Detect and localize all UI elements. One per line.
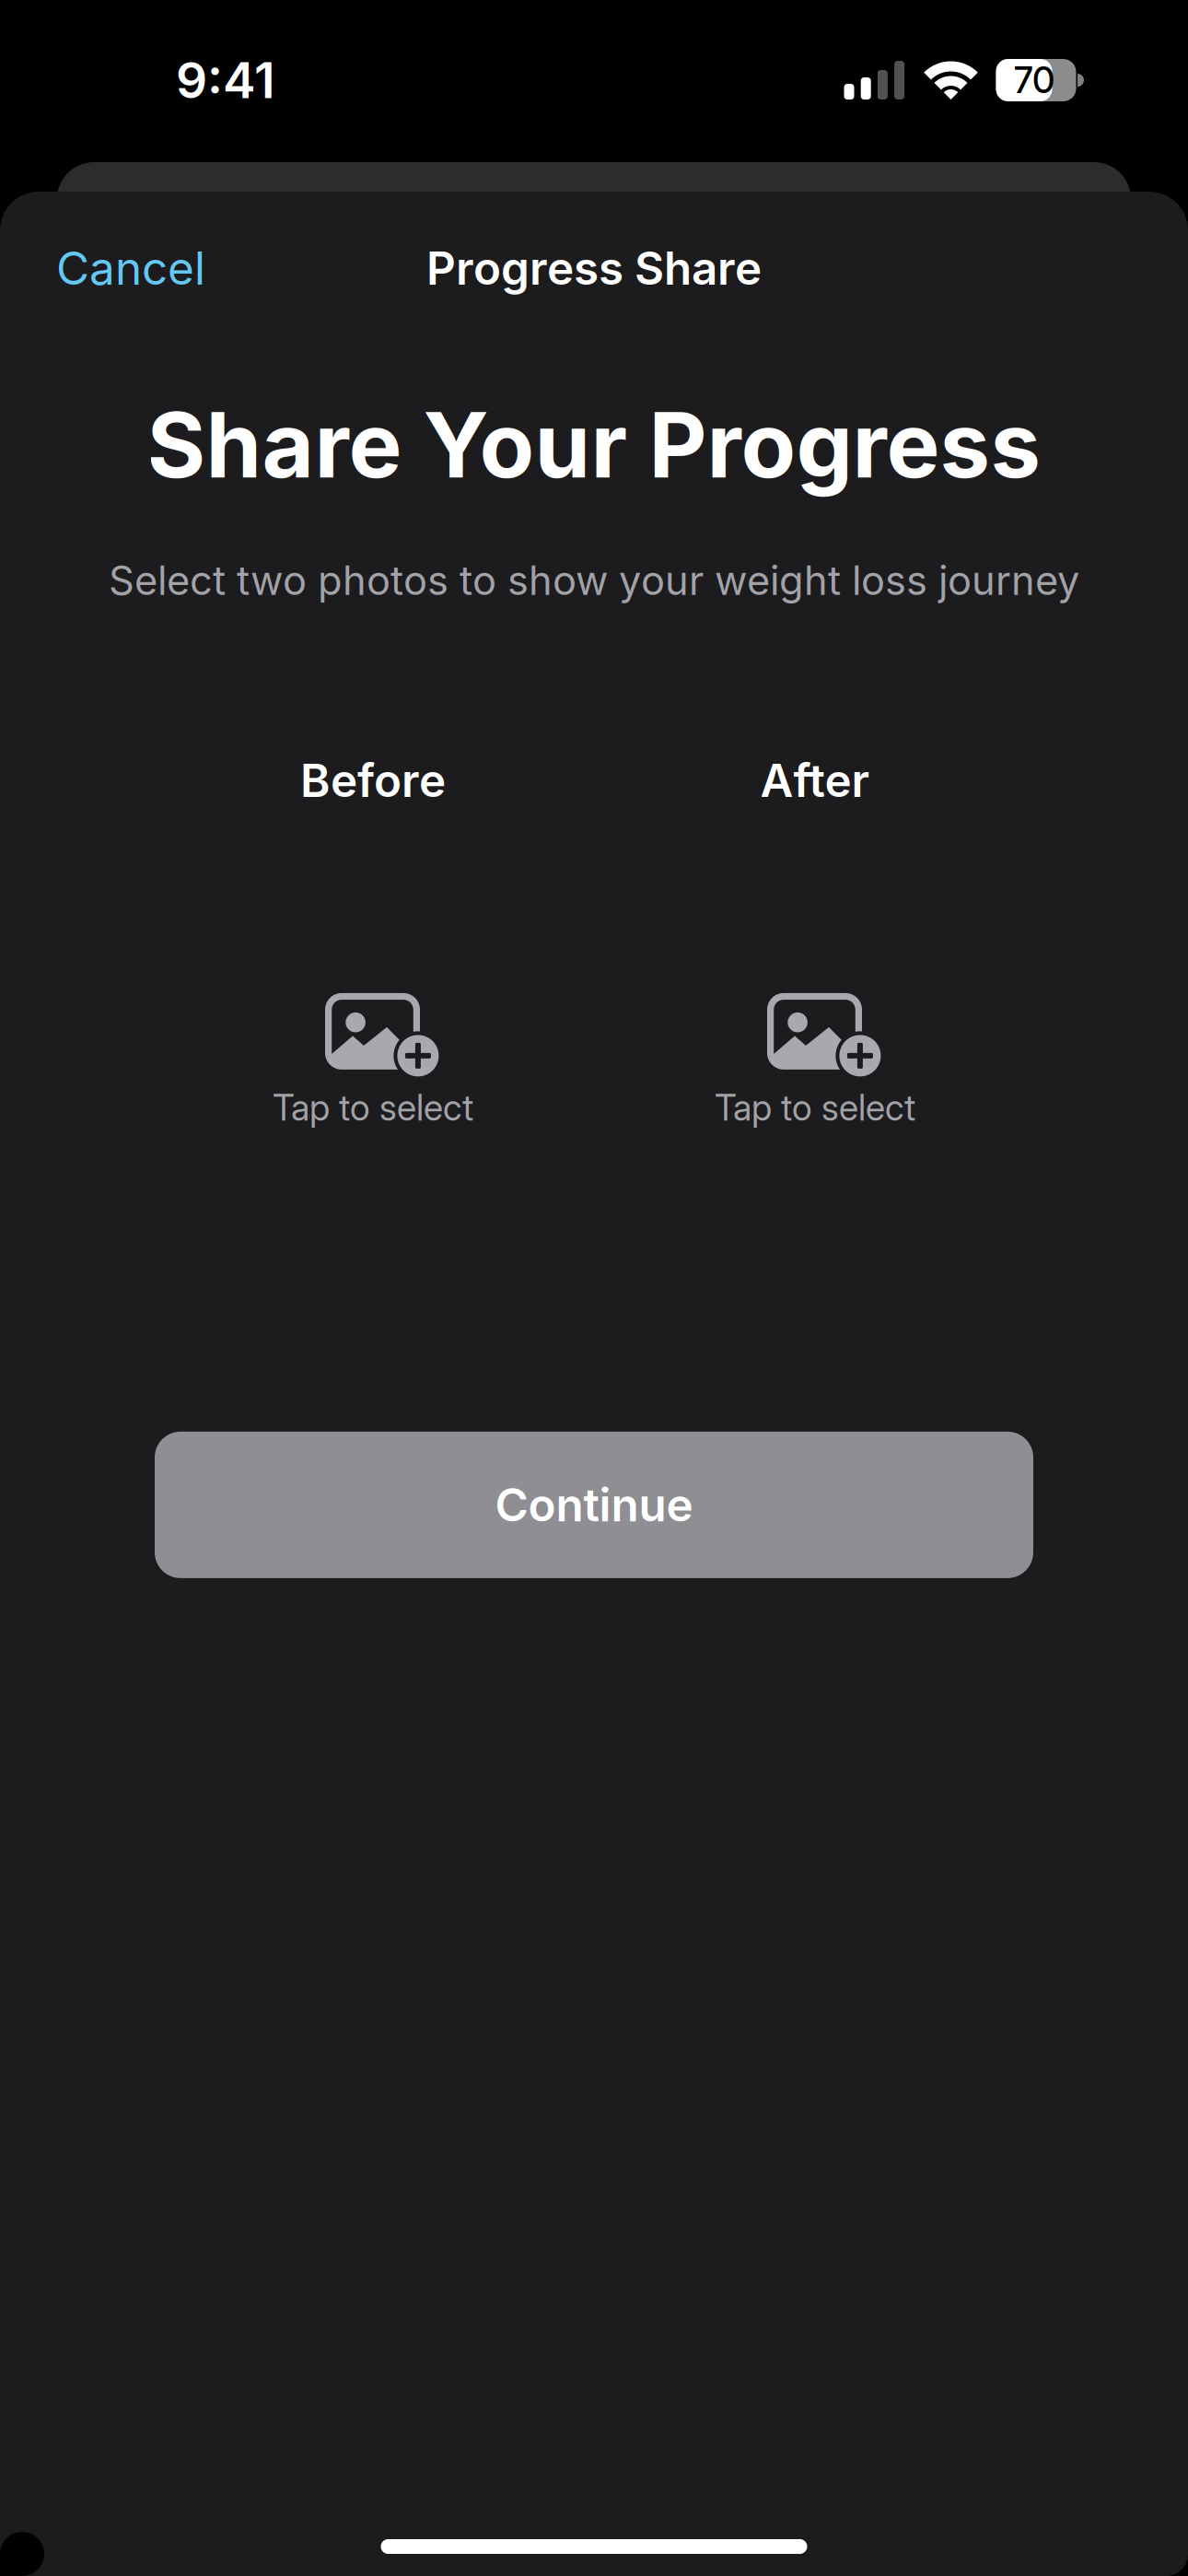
staticText: Tap to select [715,1086,915,1129]
staticText: After [760,753,870,808]
staticText: Select two photos to show your weight lo… [109,556,1079,605]
staticText: Share Your Progress [147,391,1041,499]
staticText: Progress Share [426,241,762,296]
staticText: Continue [495,1477,693,1532]
staticText: Before [300,753,446,808]
staticText: Cancel [56,241,205,296]
button[interactable]: Continue [155,1432,1033,1578]
button[interactable]: Tap to select [152,837,594,1304]
staticText: Tap to select [273,1086,473,1129]
button[interactable]: Tap to select [594,837,1036,1304]
button[interactable]: Cancel [56,241,205,296]
staticText: 9:41 [176,50,275,110]
staticText: 70 [1014,59,1054,102]
